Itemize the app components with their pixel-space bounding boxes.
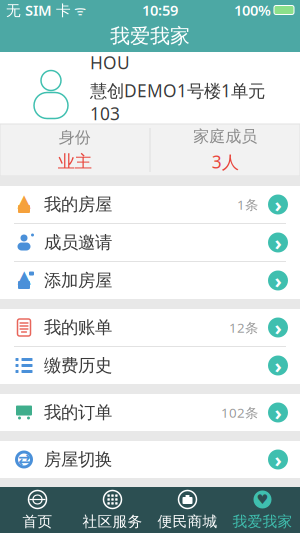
staticText: 我的账单 <box>44 317 112 338</box>
staticText: › <box>274 267 281 294</box>
button[interactable]: ⇄ <box>0 441 300 478</box>
staticText: HOU <box>90 51 130 74</box>
staticText: ♥ <box>256 492 268 507</box>
staticText: 我爱我家 <box>232 512 292 530</box>
staticText: 添加房屋 <box>44 270 112 291</box>
staticText: 成员邀请 <box>44 232 112 253</box>
staticText: 社区服务 <box>82 512 142 530</box>
staticText: › <box>274 191 281 218</box>
staticText: 10:59 <box>142 0 178 20</box>
staticText: 无 SIM 卡 <box>6 0 71 20</box>
staticText: 12条 <box>229 319 258 336</box>
staticText: › <box>274 399 281 426</box>
staticText: 缴费历史 <box>44 355 112 376</box>
staticText: 我爱我家 <box>110 24 190 48</box>
staticText: 1条 <box>237 196 258 213</box>
staticText: 业主 <box>58 151 92 172</box>
staticText: 便民商城 <box>157 512 217 530</box>
button[interactable]: ▲ <box>0 186 300 223</box>
button[interactable]: 便民商城 <box>150 487 225 533</box>
staticText: 我的订单 <box>44 402 112 423</box>
button[interactable]: 我的账单 <box>0 309 300 346</box>
staticText: 身份 <box>59 127 91 147</box>
staticText: 3人 <box>212 150 239 173</box>
staticText: ⇄ <box>18 451 30 468</box>
button[interactable]: 首页 <box>0 487 75 533</box>
staticText: › <box>274 352 281 379</box>
button[interactable]: 成员邀请 <box>0 224 300 261</box>
button[interactable]: 社区服务 <box>75 487 150 533</box>
staticText: 家庭成员 <box>193 127 257 146</box>
staticText: › <box>274 446 281 473</box>
staticText: 我的房屋 <box>44 194 112 215</box>
staticText: ▲ <box>17 267 30 286</box>
staticText: › <box>274 229 281 256</box>
button[interactable]: 缴费历史 <box>0 347 300 384</box>
button[interactable]: ▲ <box>0 262 300 299</box>
staticText: 房屋切换 <box>44 449 112 470</box>
staticText: 慧创DEMO1号楼1单元103 <box>90 79 265 125</box>
button[interactable]: 我的订单 <box>0 394 300 431</box>
staticText: 100% <box>234 0 271 20</box>
staticText: 首页 <box>22 512 52 530</box>
staticText: 102条 <box>221 404 258 421</box>
staticText: › <box>274 314 281 341</box>
button[interactable]: ♥ <box>225 487 300 533</box>
staticText: ▲ <box>17 191 30 210</box>
staticText: ᯤ <box>71 1 86 19</box>
